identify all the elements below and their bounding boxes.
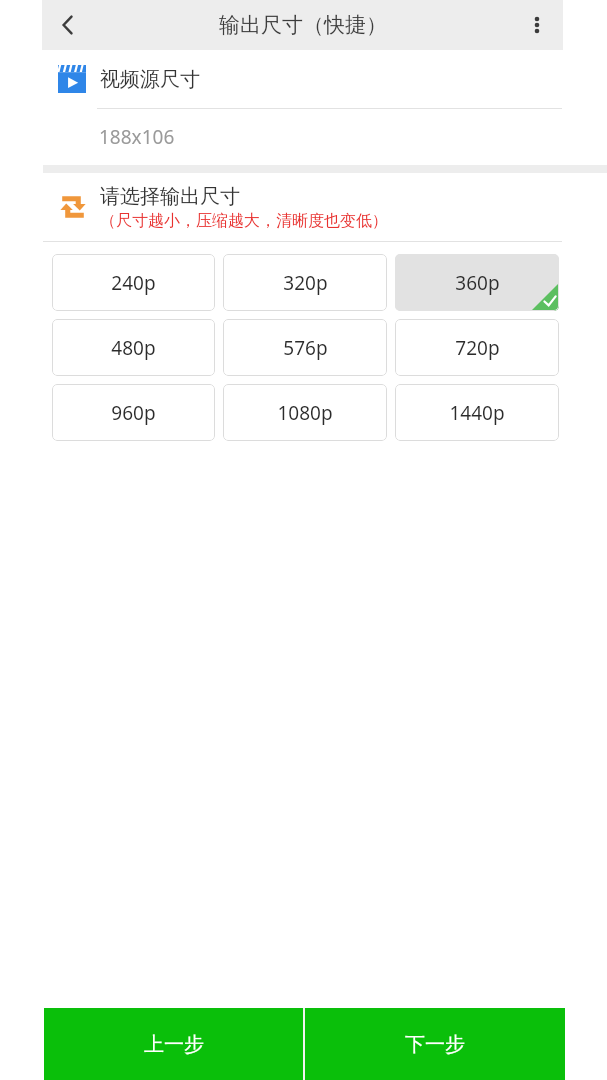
button[interactable]: 576p bbox=[223, 319, 387, 376]
button[interactable]: 360p bbox=[395, 254, 559, 311]
staticText: 上一步 bbox=[144, 1032, 204, 1057]
staticText: 188x106 bbox=[99, 124, 175, 150]
button[interactable]: 视频源尺寸 bbox=[0, 50, 607, 108]
button[interactable]: 720p bbox=[395, 319, 559, 376]
button[interactable]: More options bbox=[511, 0, 563, 50]
button[interactable]: 240p bbox=[52, 254, 215, 311]
staticText: 240p bbox=[111, 270, 156, 296]
staticText: 1440p bbox=[449, 400, 505, 426]
staticText: 1080p bbox=[277, 400, 333, 426]
staticText: 576p bbox=[283, 335, 328, 361]
button[interactable]: 480p bbox=[52, 319, 215, 376]
button[interactable]: 下一步 bbox=[305, 1008, 565, 1080]
staticText: 960p bbox=[111, 400, 156, 426]
staticText: 360p bbox=[455, 270, 500, 296]
staticText: 视频源尺寸 bbox=[100, 67, 200, 92]
staticText: 720p bbox=[455, 335, 500, 361]
staticText: 输出尺寸（快捷） bbox=[219, 12, 387, 38]
button[interactable]: 960p bbox=[52, 384, 215, 441]
button[interactable]: 320p bbox=[223, 254, 387, 311]
staticText: 320p bbox=[283, 270, 328, 296]
staticText: 下一步 bbox=[405, 1032, 465, 1057]
staticText: 480p bbox=[111, 335, 156, 361]
button[interactable]: 1440p bbox=[395, 384, 559, 441]
button[interactable]: 188x106 bbox=[0, 109, 607, 165]
button[interactable]: 1080p bbox=[223, 384, 387, 441]
button[interactable]: Back bbox=[42, 0, 94, 50]
staticText: （尺寸越小，压缩越大，清晰度也变低） bbox=[100, 211, 388, 231]
staticText: 请选择输出尺寸 bbox=[100, 184, 240, 209]
button[interactable]: 上一步 bbox=[44, 1008, 303, 1080]
